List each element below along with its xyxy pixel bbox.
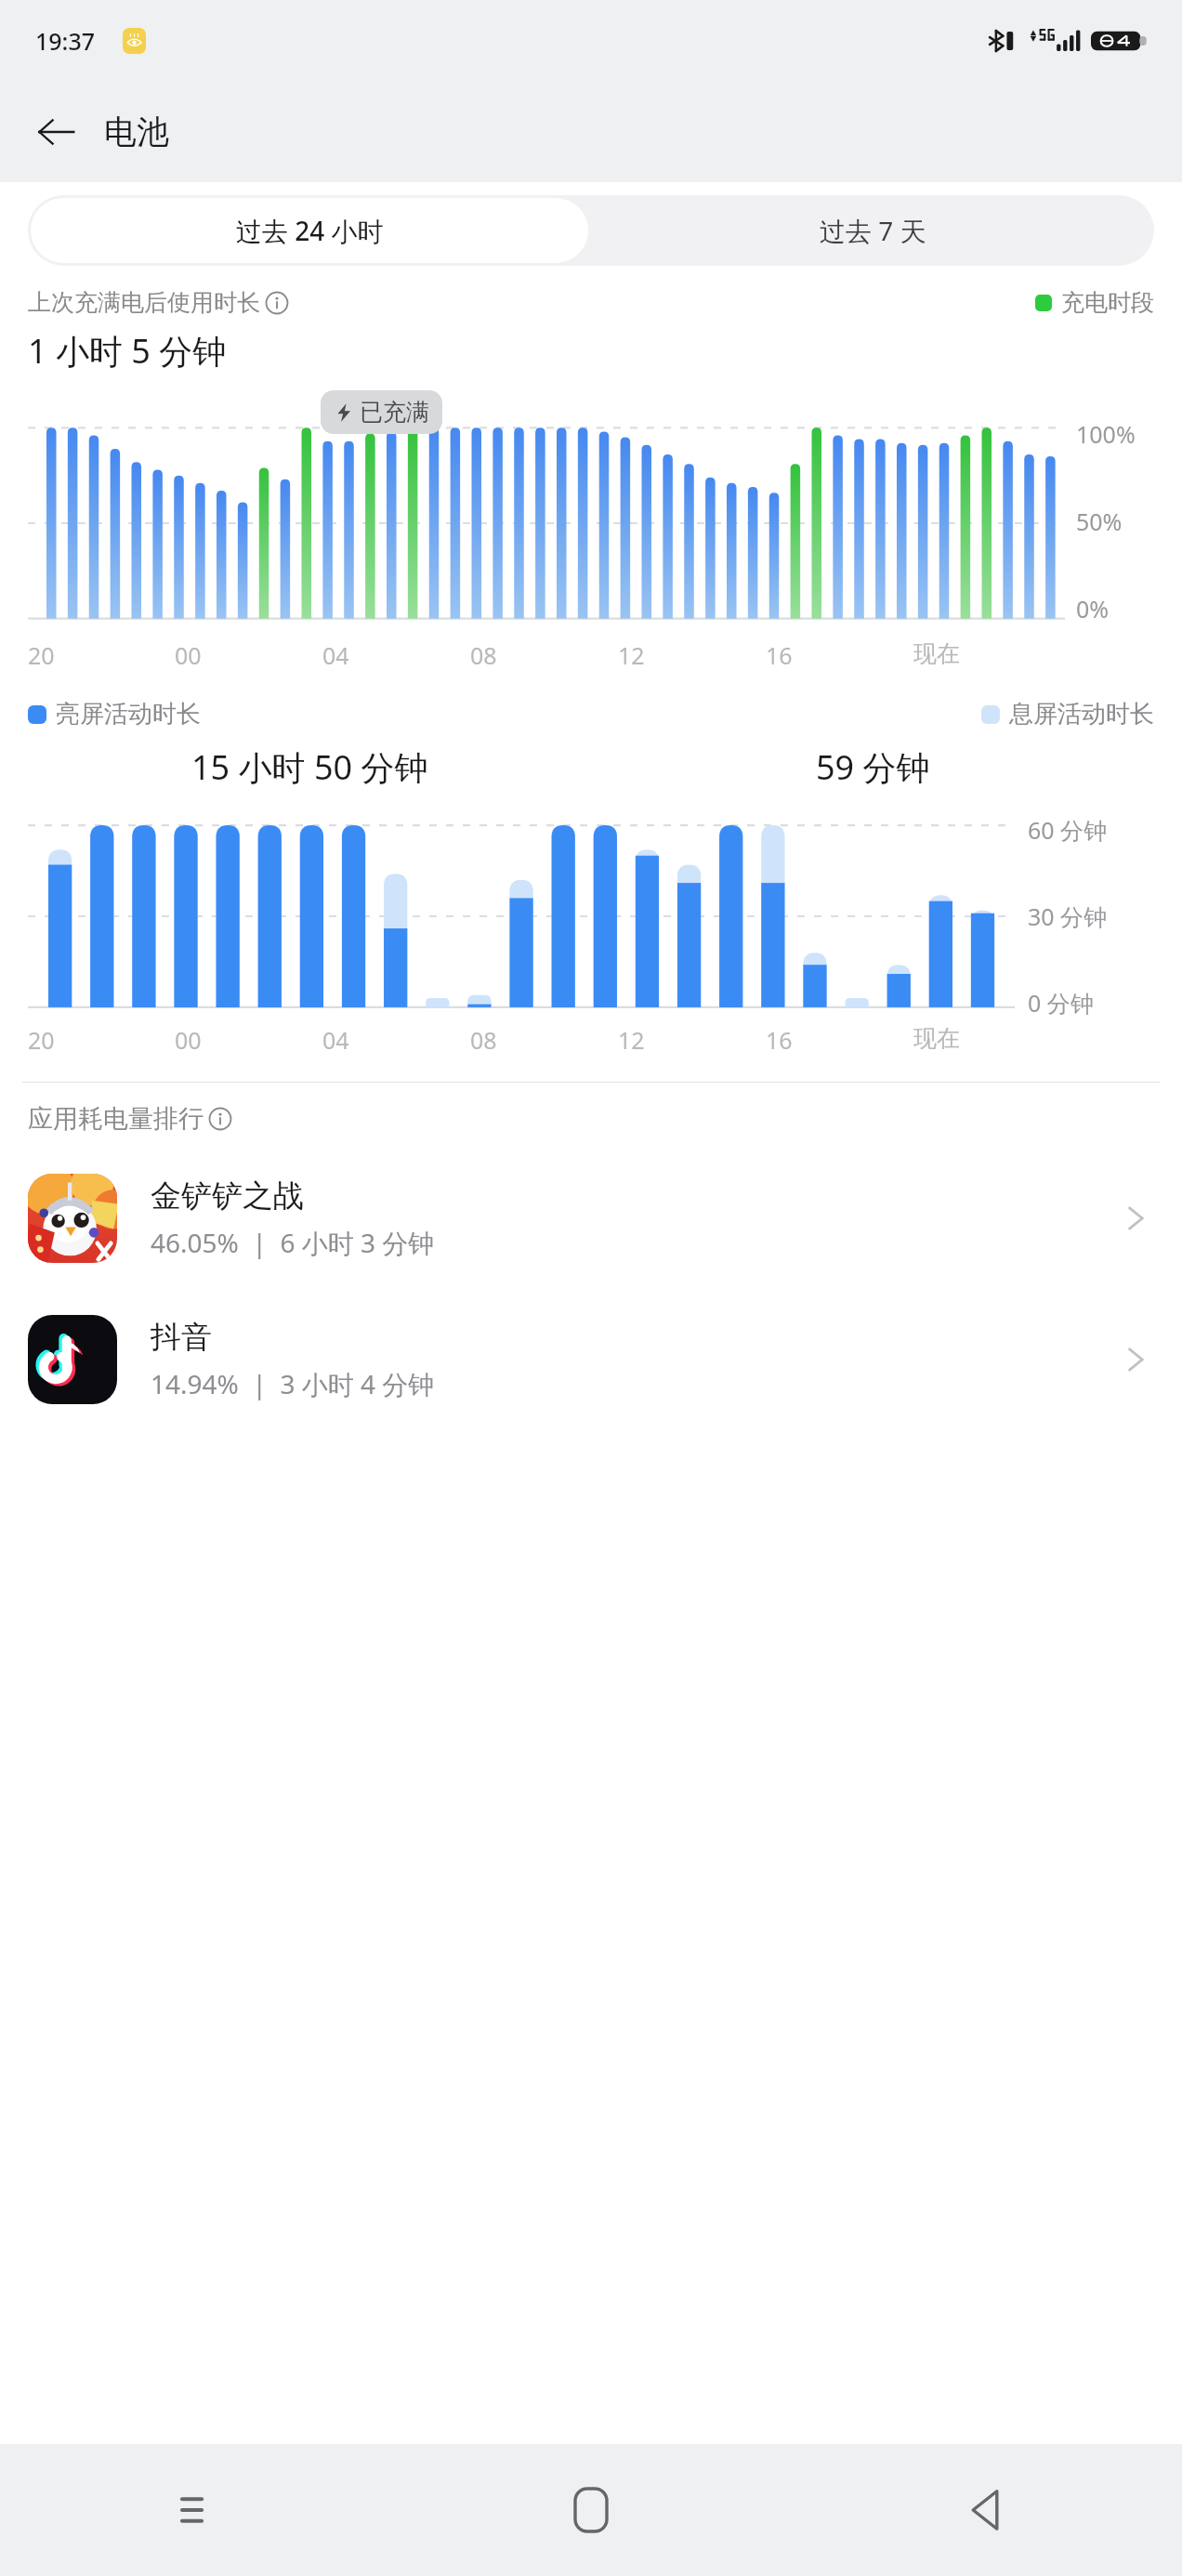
staticText: 50% [1076,506,1123,537]
button[interactable]: 抖音 [0,1289,1182,1430]
staticText: 亮屏活动时长 [56,699,201,729]
button[interactable]: 金铲铲之战 [0,1148,1182,1289]
button[interactable]: Recents [0,2444,394,2576]
staticText: 00 [175,639,202,671]
staticText: 59 分钟 [816,744,930,790]
staticText: 20 [28,1024,55,1056]
staticText: 16 [766,1024,793,1056]
staticText: 14.94% | 3 小时 4 分钟 [151,1366,435,1401]
staticText: 100% [1076,418,1136,450]
staticText: 04 [322,1024,349,1056]
staticText: 过去 24 小时 [236,213,384,248]
staticText: 已充满 [360,398,429,427]
staticText: 应用耗电量排行 [28,1103,204,1135]
staticText: 1 小时 5 分钟 [28,328,227,374]
button[interactable]: Home [394,2444,788,2576]
staticText: 现在 [913,639,960,668]
staticText: 16 [766,639,793,671]
staticText: 过去 7 天 [820,213,926,248]
button[interactable]: 过去 24 小时 [31,198,588,263]
staticText: 04 [322,639,349,671]
staticText: 60 分钟 [1028,814,1108,846]
staticText: 抖音 [151,1318,212,1357]
button[interactable]: 过去 7 天 [591,195,1154,266]
staticText: 19:37 [35,25,96,57]
staticText: 上次充满电后使用时长 [28,288,260,317]
staticText: 电池 [104,112,169,152]
staticText: 15 小时 50 分钟 [191,744,428,790]
button[interactable]: 应用耗电量排行 [28,1103,232,1135]
staticText: 0% [1076,593,1110,624]
staticText: 充电时段 [1061,288,1154,317]
staticText: 12 [618,639,645,671]
staticText: 46.05% | 6 小时 3 分钟 [151,1225,435,1260]
button[interactable]: Back [788,2444,1182,2576]
button[interactable]: Back [22,99,89,165]
button[interactable]: 上次充满电后使用时长 [28,288,289,317]
staticText: 08 [470,1024,497,1056]
staticText: 30 分钟 [1028,900,1108,932]
staticText: 12 [618,1024,645,1056]
staticText: 金铲铲之战 [151,1176,304,1216]
staticText: 0 分钟 [1028,987,1094,1019]
staticText: 08 [470,639,497,671]
staticText: 现在 [913,1024,960,1053]
staticText: 20 [28,639,55,671]
staticText: 00 [175,1024,202,1056]
staticText: 息屏活动时长 [1009,699,1154,729]
